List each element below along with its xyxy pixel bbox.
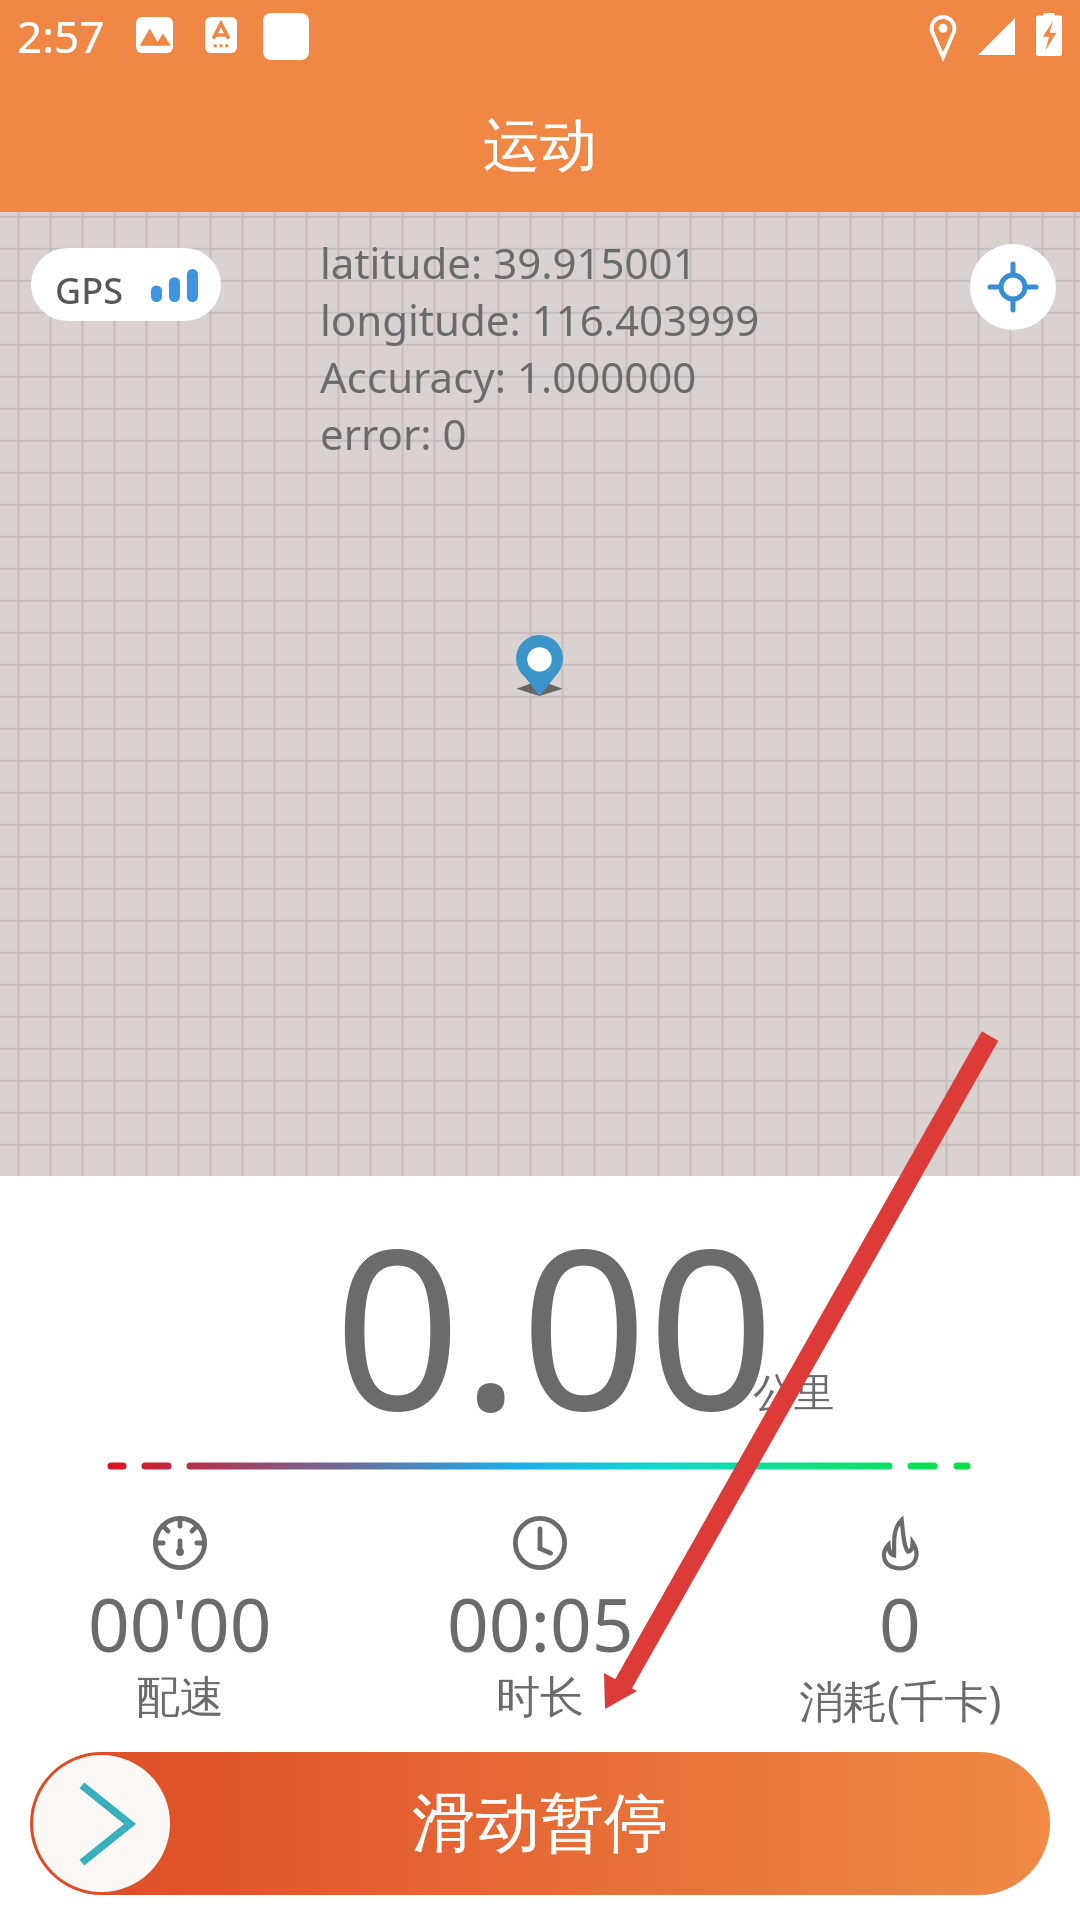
- staticText: 公里: [753, 1368, 835, 1420]
- button[interactable]: Slide to pause: [33, 1755, 170, 1892]
- staticText: 0.00: [334, 1173, 775, 1475]
- button[interactable]: 00:05: [360, 1515, 720, 1728]
- staticText: GPS: [55, 266, 123, 315]
- button[interactable]: GPS: [31, 248, 221, 321]
- staticText: 00:05: [447, 1574, 634, 1673]
- staticText: 滑动暂停: [412, 1783, 668, 1864]
- staticText: longitude: 116.403999: [320, 291, 760, 348]
- staticText: 时长: [496, 1670, 584, 1725]
- button[interactable]: 0: [720, 1515, 1080, 1733]
- staticText: 00'00: [88, 1574, 272, 1673]
- button[interactable]: 00'00: [0, 1515, 360, 1728]
- staticText: Accuracy: 1.000000: [320, 348, 697, 405]
- staticText: 消耗(千卡): [799, 1670, 1002, 1730]
- staticText: 运动: [483, 110, 597, 182]
- staticText: latitude: 39.915001: [320, 234, 697, 291]
- staticText: 2:57: [17, 6, 105, 66]
- staticText: error: 0: [320, 405, 467, 462]
- staticText: 配速: [136, 1670, 224, 1725]
- button[interactable]: 滑动暂停: [30, 1752, 1050, 1895]
- staticText: 0: [879, 1574, 921, 1673]
- button[interactable]: My location: [970, 244, 1056, 330]
